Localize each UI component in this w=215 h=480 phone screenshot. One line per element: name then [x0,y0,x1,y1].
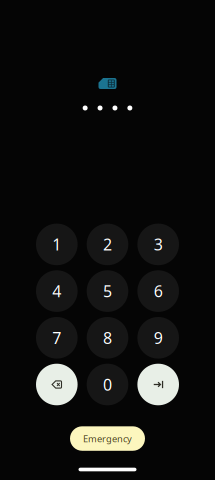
staticText: 5 [103,280,112,302]
button[interactable]: 5 [87,270,128,312]
button[interactable]: 1 [36,224,78,265]
staticText: 2 [103,234,112,255]
button[interactable]: Enter [137,364,179,405]
staticText: 9 [154,327,163,348]
button[interactable]: 2 [87,224,128,265]
staticText: 3 [154,234,163,255]
button[interactable]: 4 [36,270,78,312]
button[interactable]: Emergency [70,426,145,451]
staticText: 7 [52,327,61,348]
staticText: 6 [154,280,163,302]
staticText: 1 [52,234,61,255]
button[interactable]: 0 [87,364,128,405]
button[interactable]: 6 [137,270,179,312]
button[interactable]: 8 [87,317,128,359]
button[interactable]: Delete [36,364,78,405]
button[interactable]: 7 [36,317,78,359]
button[interactable]: 3 [137,224,179,265]
staticText: 8 [103,327,112,348]
button[interactable]: 9 [137,317,179,359]
staticText: 4 [52,280,61,302]
staticText: 0 [103,374,112,395]
staticText: Emergency [83,432,132,445]
